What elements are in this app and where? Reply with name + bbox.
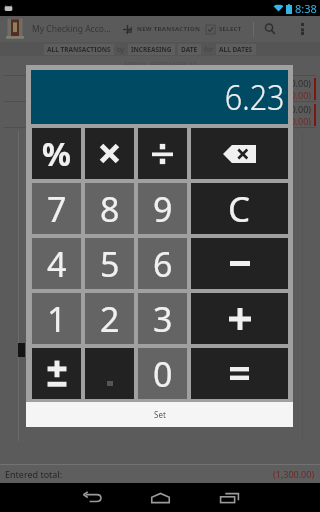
staticText: INCREASING xyxy=(131,45,172,54)
staticText: (1,300.00) xyxy=(273,468,315,480)
staticText: My Checking Acco... xyxy=(32,23,111,35)
button[interactable]: SELECT xyxy=(203,16,245,42)
button[interactable]: Home xyxy=(132,483,188,512)
button[interactable]: 4 xyxy=(32,238,81,289)
staticText: 0 xyxy=(153,351,173,397)
staticText: 2 xyxy=(100,296,120,342)
button[interactable]: Back xyxy=(64,483,120,512)
staticText: 3 xyxy=(153,296,173,342)
button[interactable]: 1 xyxy=(32,293,81,344)
staticText: 8:38 xyxy=(295,1,317,16)
staticText: 4 xyxy=(47,241,67,287)
staticText: 6 xyxy=(153,241,173,287)
staticText: FRIDAY, SEPTEMBER 13 xyxy=(124,60,197,69)
button[interactable]: Plus minus xyxy=(32,348,81,399)
button[interactable]: 0 xyxy=(138,348,187,399)
button[interactable]: % xyxy=(32,128,81,179)
staticText: 9 xyxy=(153,186,173,232)
button[interactable]: Set xyxy=(26,402,293,427)
button[interactable]: Divide xyxy=(138,128,187,179)
staticText: DATE xyxy=(181,45,198,54)
button[interactable]: NEW TRANSACTION xyxy=(120,16,204,42)
button[interactable]: My Checking Acco... xyxy=(32,16,132,42)
button[interactable]: Multiply xyxy=(85,128,134,179)
staticText: 5 xyxy=(100,241,120,287)
staticText: Entered total: xyxy=(5,468,63,480)
staticText: C xyxy=(228,185,251,233)
button[interactable]: Backspace xyxy=(191,128,288,179)
button[interactable]: Recents xyxy=(201,483,257,512)
staticText: 7 xyxy=(47,186,67,232)
staticText: (1,300.00) xyxy=(269,77,311,89)
staticText: ALL TRANSACTIONS xyxy=(47,45,111,54)
staticText: (1,300.00) xyxy=(269,89,311,101)
button[interactable]: DATE xyxy=(178,44,201,55)
button[interactable]: ALL TRANSACTIONS xyxy=(44,44,114,55)
button[interactable]: Decimal point xyxy=(85,348,134,399)
button[interactable]: 8 xyxy=(85,183,134,234)
button[interactable]: 7 xyxy=(32,183,81,234)
staticText: by xyxy=(117,45,125,54)
button[interactable]: More options xyxy=(292,16,312,42)
button[interactable]: Search xyxy=(258,16,282,42)
button[interactable]: ALL DATES xyxy=(216,44,256,55)
button[interactable]: INCREASING xyxy=(128,44,175,55)
button[interactable]: C xyxy=(191,183,288,234)
staticText: ALL DATES xyxy=(219,45,253,54)
button[interactable]: 5 xyxy=(85,238,134,289)
button[interactable]: 6 xyxy=(138,238,187,289)
button[interactable]: 3 xyxy=(138,293,187,344)
button[interactable]: 2 xyxy=(85,293,134,344)
button[interactable]: Minus xyxy=(191,238,288,289)
button[interactable]: Equals xyxy=(191,348,288,399)
staticText: (1,300.00) xyxy=(269,115,311,127)
staticText: % xyxy=(42,132,71,176)
staticText: 8 xyxy=(100,186,120,232)
staticText: for xyxy=(204,45,213,54)
button[interactable]: App icon xyxy=(0,16,30,42)
staticText: NEW TRANSACTION xyxy=(137,25,201,33)
staticText: 6.23 xyxy=(225,74,285,120)
staticText: 1 xyxy=(47,296,67,342)
button[interactable]: Plus xyxy=(191,293,288,344)
staticText: SELECT xyxy=(219,25,242,33)
staticText: (1,300.00) xyxy=(269,103,311,115)
button[interactable]: 9 xyxy=(138,183,187,234)
staticText: Set xyxy=(154,409,166,420)
